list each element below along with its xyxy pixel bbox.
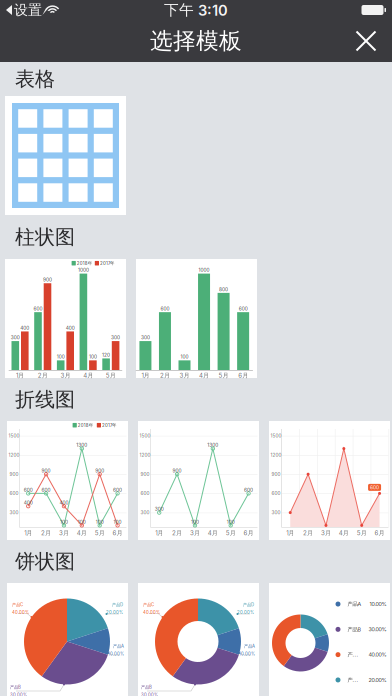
staticText: 20.00%: [368, 677, 386, 683]
staticText: 400: [20, 325, 29, 331]
staticText: 5月: [106, 372, 116, 379]
staticText: 600: [42, 487, 51, 493]
staticText: 600: [244, 487, 253, 493]
staticText: 5月: [95, 529, 105, 537]
staticText: 900: [140, 471, 149, 477]
button[interactable]: 300: [136, 259, 257, 378]
staticText: 30.00%: [368, 626, 386, 633]
staticText: 2018年: [78, 422, 93, 428]
staticText: 1300: [76, 442, 87, 448]
staticText: 1月: [155, 529, 163, 537]
staticText: 1500: [139, 433, 150, 439]
staticText: 40.00%: [12, 610, 29, 615]
staticText: 100: [78, 519, 86, 525]
staticText: 600: [140, 491, 149, 496]
staticText: 1月: [24, 529, 32, 537]
staticText: 4月: [199, 372, 209, 379]
staticText: 100: [227, 519, 235, 525]
staticText: 产品B: [10, 684, 21, 690]
staticText: 6月: [375, 529, 385, 537]
staticText: 10.00%: [369, 601, 386, 607]
staticText: 下午 3:10: [164, 1, 228, 19]
staticText: 600: [160, 306, 169, 312]
staticText: 300: [9, 510, 18, 515]
staticText: 400: [59, 500, 68, 506]
staticText: 3月: [59, 529, 69, 537]
staticText: 2月: [303, 529, 313, 537]
staticText: 300: [141, 335, 150, 340]
staticText: 100: [89, 354, 97, 360]
staticText: 600: [33, 306, 42, 312]
staticText: 40.00%: [143, 610, 160, 615]
staticText: 600: [370, 484, 379, 490]
staticText: 6月: [244, 529, 254, 537]
staticText: 100: [96, 519, 104, 525]
button[interactable]: 300: [138, 421, 259, 540]
staticText: 1200: [139, 452, 150, 458]
staticText: 柱状图: [15, 224, 75, 250]
staticText: 100: [180, 354, 188, 360]
staticText: 2017年: [102, 422, 116, 428]
staticText: 900: [43, 277, 52, 283]
button[interactable]: [5, 96, 126, 215]
staticText: 4月: [77, 529, 87, 537]
staticText: 产品D: [347, 677, 360, 683]
staticText: 100: [60, 519, 68, 525]
staticText: 产品D: [243, 602, 254, 607]
button[interactable]: 产品A: [269, 583, 390, 696]
staticText: 40.00%: [368, 651, 386, 658]
staticText: 900: [42, 468, 51, 474]
staticText: 1月: [286, 529, 294, 537]
staticText: 1000: [78, 267, 89, 273]
staticText: 600: [24, 487, 33, 493]
staticText: 2月: [160, 372, 170, 379]
button[interactable]: 300: [5, 259, 126, 378]
staticText: 2018年: [77, 260, 92, 266]
staticText: 1500: [270, 433, 281, 439]
staticText: 30.00%: [10, 692, 27, 696]
staticText: 300: [11, 335, 20, 340]
staticText: 10.00%: [239, 651, 255, 656]
staticText: 20.00%: [237, 610, 254, 615]
staticText: 5月: [219, 372, 229, 379]
staticText: 6月: [238, 372, 248, 379]
staticText: 120: [102, 352, 110, 358]
staticText: 产品A: [244, 643, 255, 649]
staticText: 900: [9, 471, 18, 477]
staticText: 300: [111, 335, 120, 340]
button[interactable]: 产品C: [7, 583, 128, 696]
staticText: 产品D: [112, 602, 123, 607]
button[interactable]: 300: [269, 421, 390, 540]
staticText: 折线图: [15, 387, 75, 412]
staticText: 5月: [226, 529, 236, 537]
staticText: 2月: [41, 529, 51, 537]
staticText: 产品B: [347, 626, 360, 633]
staticText: 3月: [60, 372, 70, 379]
staticText: 20.00%: [106, 610, 123, 615]
staticText: 1000: [198, 267, 209, 273]
staticText: 5月: [357, 529, 367, 537]
staticText: 产品B: [141, 684, 152, 690]
staticText: 30.00%: [141, 692, 158, 696]
staticText: 3月: [179, 372, 189, 379]
staticText: 600: [239, 306, 248, 312]
staticText: 400: [24, 500, 33, 506]
staticText: 产品C: [347, 651, 360, 658]
staticText: 900: [95, 468, 104, 474]
button[interactable]: 300: [7, 421, 128, 540]
staticText: 300: [155, 506, 164, 512]
staticText: 1月: [16, 372, 24, 379]
button[interactable]: 关闭: [340, 20, 392, 62]
staticText: 2月: [172, 529, 182, 537]
staticText: 4月: [83, 372, 93, 379]
staticText: 1300: [207, 442, 218, 448]
button[interactable]: 产品C: [138, 583, 259, 696]
staticText: 产品A: [347, 601, 361, 607]
staticText: 100: [114, 519, 122, 525]
staticText: 100: [191, 519, 199, 525]
staticText: 300: [271, 510, 280, 515]
staticText: 产品C: [12, 602, 23, 607]
staticText: 600: [271, 491, 280, 496]
staticText: 1500: [8, 433, 19, 439]
staticText: 产品C: [143, 602, 154, 607]
